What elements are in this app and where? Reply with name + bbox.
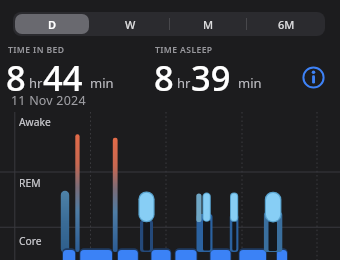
staticText: Awake [19,115,51,129]
staticText: min [90,74,114,92]
button[interactable]: M [169,12,247,36]
staticText: TIME ASLEEP [155,44,213,56]
staticText: 44 [43,54,83,101]
staticText: 11 Nov 2024 [11,92,86,109]
button[interactable]: W [91,12,169,36]
button[interactable] [301,65,326,90]
staticText: hr [29,74,43,92]
staticText: W [125,17,136,32]
staticText: 8 [154,54,174,101]
staticText: hr [177,74,191,92]
staticText: 6M [278,17,295,32]
staticText: 8 [6,54,26,101]
staticText: TIME IN BED [8,44,65,56]
button[interactable]: 6M [247,12,325,36]
staticText: D [48,17,57,32]
button[interactable]: D [13,12,91,36]
staticText: REM [19,176,41,190]
staticText: min [238,74,262,92]
staticText: Core [19,234,42,248]
staticText: M [203,17,214,32]
staticText: 39 [191,54,231,101]
